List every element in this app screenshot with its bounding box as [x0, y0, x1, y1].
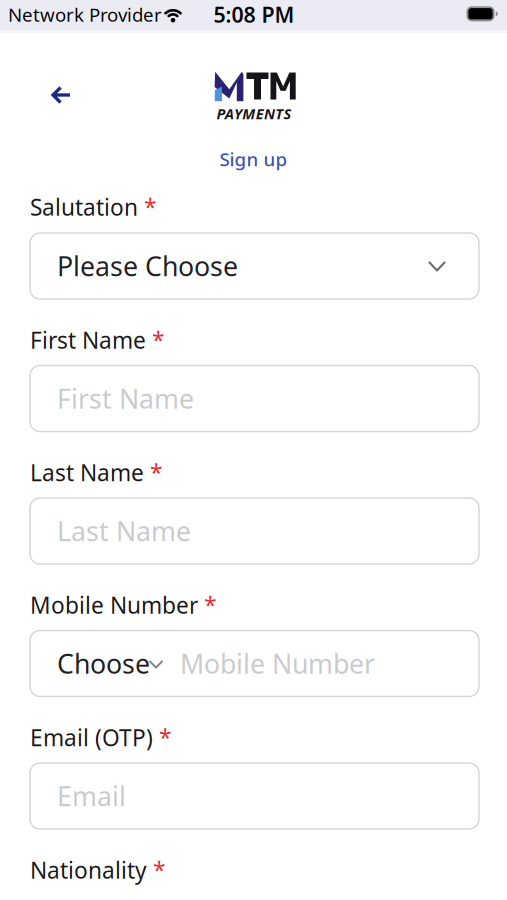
button[interactable]: Please Choose [30, 233, 479, 299]
button[interactable]: First Name [30, 365, 479, 431]
staticText: * [150, 457, 162, 487]
staticText: Choose [57, 646, 150, 681]
staticText: Network Provider [8, 2, 162, 27]
staticText: First Name [57, 381, 194, 416]
staticText: Last Name [30, 457, 144, 487]
staticText: 5:08 PM [213, 0, 294, 29]
staticText: PAYMENTS [216, 104, 292, 123]
staticText: * [152, 325, 164, 355]
staticText: * [204, 590, 216, 620]
staticText: * [144, 192, 156, 222]
staticText: Nationality [30, 855, 147, 885]
button[interactable]: Last Name [30, 498, 479, 564]
staticText: * [159, 722, 171, 752]
button[interactable]: Email [30, 763, 479, 829]
staticText: Email [57, 778, 126, 814]
staticText: Salutation [30, 192, 138, 222]
staticText: Please Choose [57, 248, 238, 284]
staticText: Sign up [219, 147, 287, 171]
staticText: Last Name [57, 513, 191, 549]
staticText: Email (OTP) [30, 722, 153, 752]
staticText: Mobile Number [30, 590, 198, 620]
button[interactable]: Choose [30, 630, 479, 696]
button[interactable]: Back [49, 85, 73, 105]
staticText: Mobile Number [180, 646, 375, 681]
staticText: * [153, 855, 165, 885]
staticText: First Name [30, 325, 146, 355]
